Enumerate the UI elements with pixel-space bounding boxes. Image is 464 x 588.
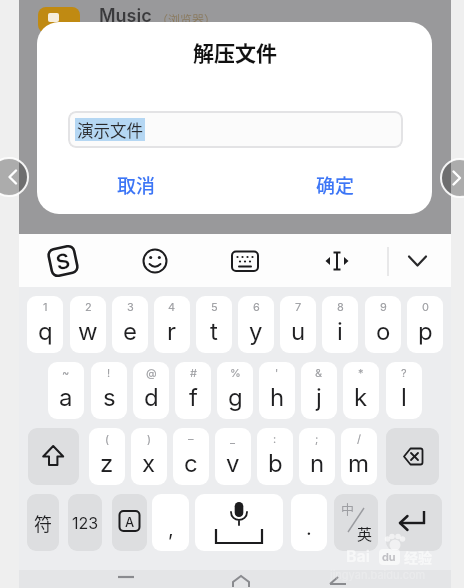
staticText: v: [226, 449, 240, 478]
button[interactable]: !: [91, 362, 127, 419]
button[interactable]: [27, 494, 59, 551]
staticText: ): [147, 432, 152, 445]
button[interactable]: ;: [299, 428, 335, 485]
button[interactable]: [44, 236, 92, 284]
button[interactable]: 确定: [285, 163, 385, 207]
button[interactable]: (: [89, 428, 125, 485]
staticText: 0: [422, 300, 429, 313]
staticText: d: [144, 383, 159, 412]
button[interactable]: 0: [407, 296, 443, 353]
staticText: ?: [401, 366, 407, 379]
staticText: 解压文件: [193, 37, 277, 67]
staticText: #: [190, 366, 197, 379]
button[interactable]: ~: [48, 362, 84, 419]
button[interactable]: 5: [196, 296, 232, 353]
button[interactable]: [0, 158, 28, 196]
button[interactable]: [334, 494, 378, 551]
staticText: ,: [168, 517, 174, 541]
staticText: *: [358, 366, 364, 379]
button[interactable]: [112, 494, 147, 551]
button[interactable]: [28, 428, 79, 485]
button[interactable]: [152, 494, 189, 551]
staticText: 1: [43, 300, 48, 313]
button[interactable]: [386, 494, 442, 551]
staticText: b: [268, 449, 283, 478]
staticText: w: [78, 317, 98, 346]
staticText: 123: [72, 513, 99, 532]
staticText: i: [337, 317, 343, 346]
staticText: 5: [211, 300, 218, 313]
button[interactable]: [131, 236, 179, 284]
button[interactable]: [313, 236, 361, 284]
button[interactable]: [386, 428, 439, 485]
button[interactable]: [68, 494, 102, 551]
staticText: 2: [85, 300, 92, 313]
button[interactable]: @: [133, 362, 169, 419]
button[interactable]: 8: [322, 296, 358, 353]
staticText: 3: [127, 300, 134, 313]
staticText: Music: [99, 5, 152, 27]
staticText: e: [123, 317, 137, 346]
button[interactable]: #: [175, 362, 211, 419]
staticText: x: [142, 449, 156, 478]
button[interactable]: [441, 159, 464, 197]
staticText: .: [306, 516, 312, 540]
staticText: c: [184, 449, 198, 478]
staticText: ': [275, 366, 279, 379]
staticText: r: [167, 317, 177, 346]
staticText: (: [105, 432, 110, 445]
button[interactable]: ?: [386, 362, 422, 419]
button[interactable]: 4: [154, 296, 190, 353]
button[interactable]: ): [131, 428, 167, 485]
staticText: _: [230, 432, 236, 445]
staticText: /: [357, 432, 361, 445]
button[interactable]: –: [173, 428, 209, 485]
staticText: t: [210, 317, 218, 346]
button[interactable]: ': [259, 362, 295, 419]
staticText: &: [315, 366, 323, 379]
staticText: l: [401, 383, 407, 412]
button[interactable]: :: [257, 428, 293, 485]
button[interactable]: 3: [112, 296, 148, 353]
staticText: s: [103, 383, 116, 412]
staticText: 取消: [117, 171, 156, 199]
staticText: du: [382, 550, 396, 563]
button[interactable]: 6: [238, 296, 274, 353]
staticText: p: [418, 317, 433, 346]
staticText: o: [376, 317, 391, 346]
staticText: –: [188, 432, 194, 445]
staticText: z: [100, 449, 114, 478]
staticText: n: [310, 449, 325, 478]
staticText: ~: [62, 366, 70, 379]
button[interactable]: %: [217, 362, 253, 419]
staticText: %: [230, 366, 241, 379]
staticText: h: [270, 383, 285, 412]
staticText: 确定: [316, 171, 355, 199]
staticText: （浏览器）: [156, 11, 217, 28]
button[interactable]: [221, 236, 269, 284]
button[interactable]: *: [343, 362, 379, 419]
button[interactable]: 7: [280, 296, 316, 353]
button[interactable]: 取消: [86, 163, 186, 207]
button[interactable]: /: [341, 428, 377, 485]
staticText: :: [273, 432, 277, 445]
staticText: k: [354, 383, 368, 412]
staticText: A: [125, 514, 135, 530]
staticText: jingyan.baidu.com: [330, 568, 426, 581]
button[interactable]: &: [301, 362, 337, 419]
button[interactable]: [393, 236, 441, 284]
staticText: S: [54, 248, 72, 275]
button[interactable]: _: [215, 428, 251, 485]
button[interactable]: [291, 494, 327, 551]
staticText: ;: [315, 432, 319, 445]
staticText: 英: [357, 523, 373, 545]
staticText: 7: [295, 300, 302, 313]
button[interactable]: [195, 494, 283, 551]
button[interactable]: 1: [27, 296, 63, 353]
staticText: !: [107, 366, 111, 379]
button[interactable]: 9: [365, 296, 401, 353]
staticText: 6: [253, 300, 260, 313]
staticText: a: [59, 383, 73, 412]
button[interactable]: 2: [70, 296, 106, 353]
staticText: j: [316, 383, 322, 412]
